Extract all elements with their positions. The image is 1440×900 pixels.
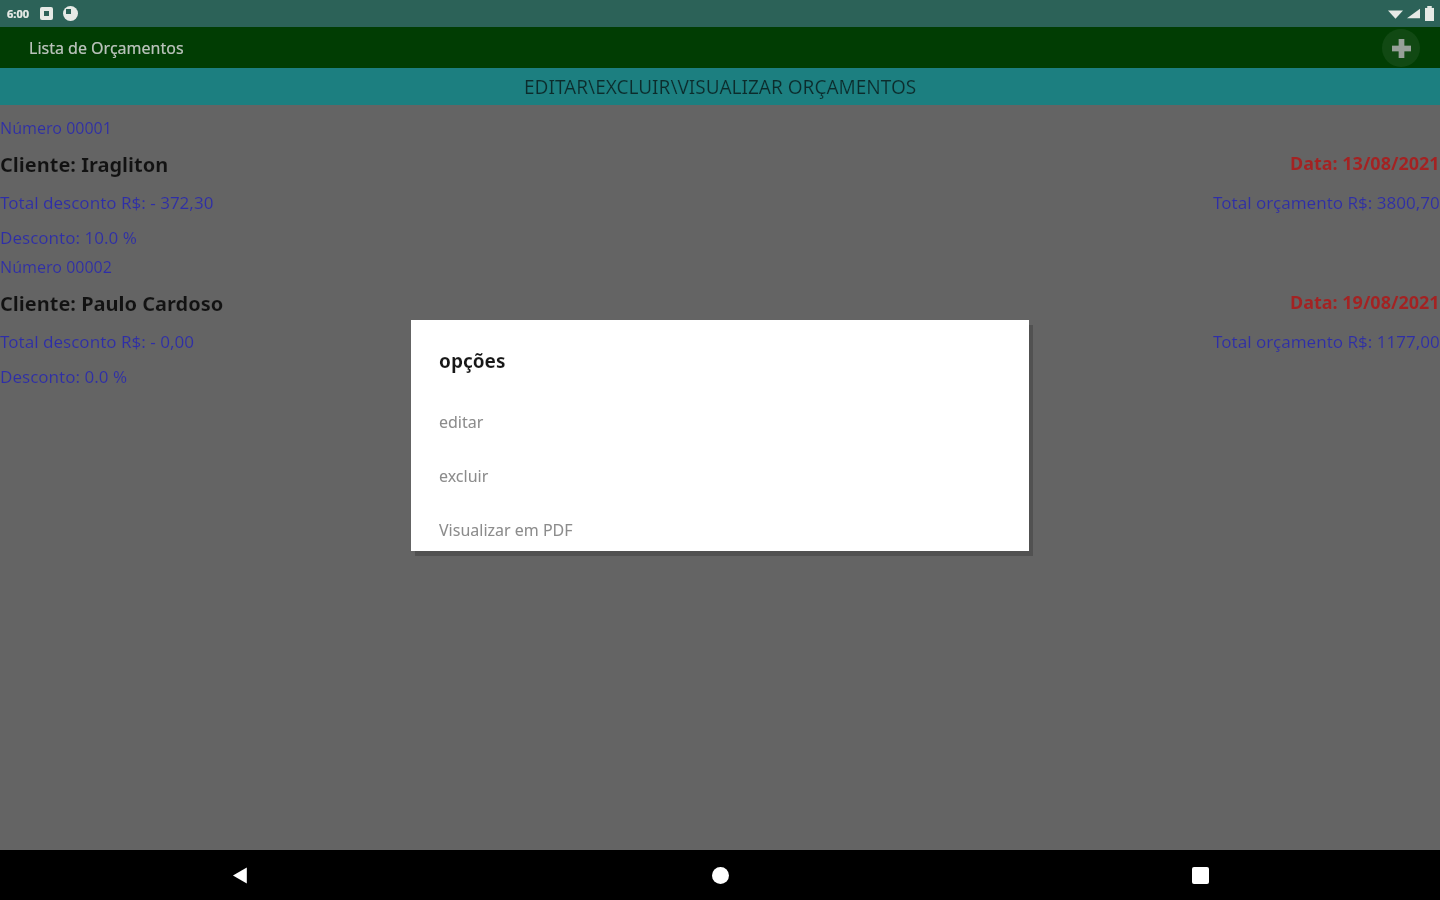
staticText: 6:00 xyxy=(7,6,29,21)
staticText: opções xyxy=(439,348,506,374)
staticText: Data: 13/08/2021 xyxy=(1290,151,1440,176)
staticText: Total orçamento R$: 3800,70 xyxy=(1213,191,1440,214)
staticText: Visualizar em PDF xyxy=(439,519,573,541)
staticText: Cliente: Paulo Cardoso xyxy=(0,290,224,317)
staticText: Lista de Orçamentos xyxy=(29,37,184,59)
button[interactable]: editar xyxy=(411,395,1029,449)
button[interactable]: Adicionar orçamento xyxy=(1382,29,1420,67)
staticText: Número 00002 xyxy=(0,256,112,278)
staticText: Total orçamento R$: 1177,00 xyxy=(1213,330,1440,353)
button[interactable]: Início xyxy=(480,850,960,900)
staticText: editar xyxy=(439,411,484,433)
button[interactable]: excluir xyxy=(411,449,1029,503)
button[interactable]: Voltar xyxy=(0,850,480,900)
staticText: Desconto: 0.0 % xyxy=(0,365,128,388)
staticText: EDITAR\EXCLUIR\VISUALIZAR ORÇAMENTOS xyxy=(524,74,917,100)
button[interactable]: Lista de Orçamentos xyxy=(29,37,184,59)
button[interactable]: Número 00002 xyxy=(0,244,1440,383)
button[interactable]: Visualizar em PDF xyxy=(411,503,1029,557)
staticText: Total desconto R$: - 0,00 xyxy=(0,330,194,353)
button[interactable]: Recentes xyxy=(960,850,1440,900)
staticText: excluir xyxy=(439,465,489,487)
staticText: Cliente: Iragliton xyxy=(0,151,169,178)
staticText: Desconto: 10.0 % xyxy=(0,226,137,249)
staticText: Número 00001 xyxy=(0,117,112,139)
button[interactable]: Número 00001 xyxy=(0,105,1440,244)
staticText: Data: 19/08/2021 xyxy=(1290,290,1440,315)
staticText: Total desconto R$: - 372,30 xyxy=(0,191,214,214)
